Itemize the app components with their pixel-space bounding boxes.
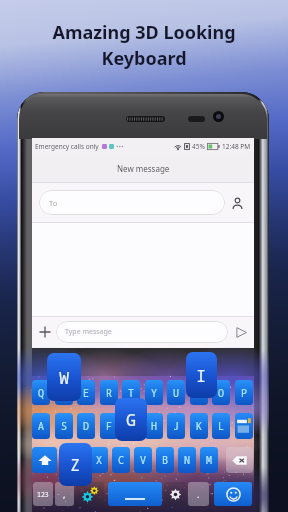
button[interactable]: H — [145, 413, 163, 439]
button[interactable]: T — [122, 380, 140, 405]
button[interactable]: V — [134, 447, 152, 473]
staticText: I — [196, 386, 202, 400]
staticText: . — [197, 488, 200, 500]
button[interactable]: J — [167, 413, 185, 439]
button[interactable]: 123 — [33, 482, 53, 506]
staticText: Amazing 3D Looking — [52, 20, 236, 45]
button[interactable]: E — [77, 380, 95, 405]
button[interactable]: L — [212, 413, 230, 439]
button[interactable]: To — [39, 190, 225, 215]
staticText: V — [140, 453, 146, 467]
button[interactable]: G — [122, 413, 140, 439]
button[interactable]: Space — [108, 482, 162, 506]
button[interactable]: Shift — [32, 447, 57, 473]
button[interactable]: Settings — [164, 482, 187, 506]
staticText: C — [118, 453, 124, 467]
button[interactable]: R — [100, 380, 118, 405]
button[interactable]: Comma — [55, 482, 74, 506]
staticText: R — [106, 386, 112, 400]
button[interactable]: Q — [32, 380, 50, 405]
staticText: To — [49, 198, 58, 208]
staticText: M — [206, 453, 212, 467]
button[interactable]: A — [32, 413, 50, 439]
button[interactable]: I — [190, 380, 208, 405]
staticText: H — [151, 419, 157, 433]
button[interactable]: Z — [59, 443, 92, 486]
button[interactable]: W — [47, 353, 81, 401]
button[interactable]: K — [190, 413, 208, 439]
button[interactable]: W — [55, 380, 73, 405]
staticText: G — [126, 408, 137, 431]
button[interactable]: Send — [232, 323, 250, 341]
staticText: X — [96, 453, 102, 467]
button[interactable]: Z — [69, 447, 87, 473]
staticText: Y — [151, 386, 157, 400]
button[interactable]: C — [112, 447, 130, 473]
button[interactable]: I — [186, 352, 217, 398]
button[interactable]: Emoji — [76, 482, 104, 506]
staticText: I — [196, 364, 207, 387]
button[interactable]: S — [55, 413, 73, 439]
staticText: U — [173, 386, 179, 400]
staticText: T — [128, 386, 134, 400]
staticText: D — [83, 419, 89, 433]
button[interactable]: F — [100, 413, 118, 439]
button[interactable]: Period — [188, 482, 209, 506]
staticText: Z — [75, 453, 81, 467]
staticText: W — [61, 386, 67, 400]
button[interactable]: Add attachment — [36, 323, 54, 341]
button[interactable]: Backspace — [226, 447, 253, 473]
staticText: A — [38, 419, 44, 433]
staticText: , — [63, 488, 66, 500]
button[interactable]: Emoji keyboard — [214, 482, 252, 506]
staticText: New message — [117, 163, 170, 174]
staticText: W — [59, 366, 70, 389]
staticText: P — [241, 386, 247, 400]
staticText: E — [83, 386, 89, 400]
staticText: B — [162, 453, 168, 467]
staticText: Q — [38, 386, 44, 400]
staticText: 12:48 PM — [222, 142, 251, 151]
staticText: J — [173, 419, 179, 433]
staticText: L — [218, 419, 224, 433]
button[interactable]: Stickers — [235, 413, 253, 439]
button[interactable]: N — [178, 447, 196, 473]
button[interactable]: B — [156, 447, 174, 473]
staticText: S — [61, 419, 67, 433]
button[interactable]: P — [235, 380, 253, 405]
button[interactable]: Type message — [56, 321, 228, 343]
staticText: Keyboard — [101, 46, 187, 71]
staticText: N — [184, 453, 190, 467]
staticText: 123 — [37, 490, 49, 499]
button[interactable]: U — [167, 380, 185, 405]
staticText: 45% — [192, 142, 205, 151]
button[interactable]: D — [77, 413, 95, 439]
button[interactable]: O — [212, 380, 230, 405]
staticText: Type message — [65, 327, 112, 337]
button[interactable]: M — [200, 447, 218, 473]
staticText: K — [196, 419, 202, 433]
button[interactable]: Choose contact — [227, 193, 247, 213]
staticText: O — [218, 386, 224, 400]
button[interactable]: Y — [145, 380, 163, 405]
button[interactable]: G — [115, 398, 147, 441]
staticText: Z — [70, 453, 81, 476]
staticText: Emergency calls only — [35, 142, 99, 151]
staticText: F — [106, 419, 112, 433]
staticText: G — [128, 419, 134, 433]
button[interactable]: X — [90, 447, 108, 473]
